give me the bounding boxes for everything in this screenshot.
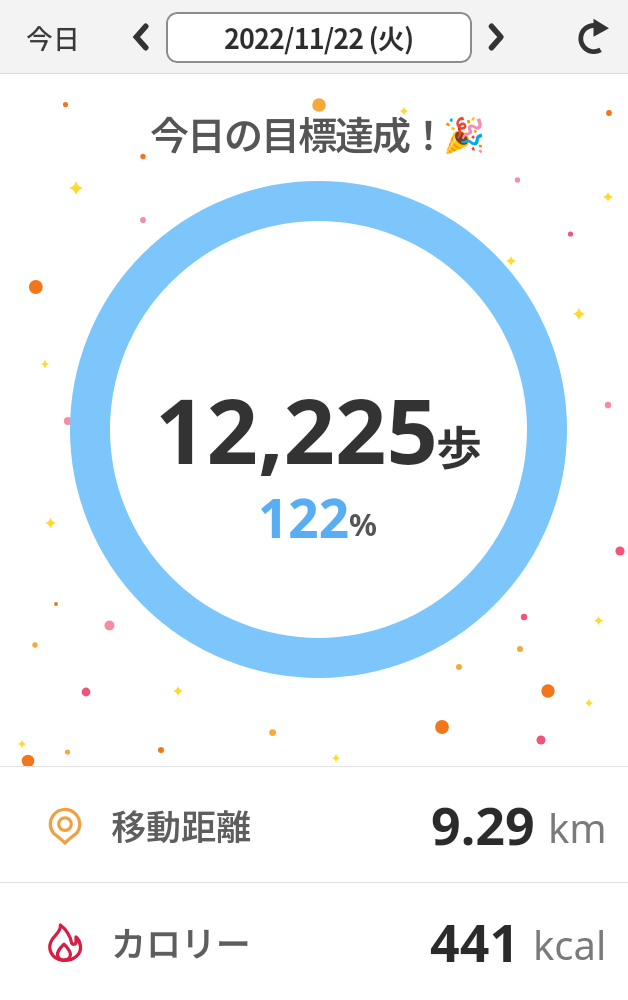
button[interactable]: 2022/11/22 (火) xyxy=(166,12,472,63)
staticText: 🎉 xyxy=(443,115,486,155)
button[interactable]: カロリー xyxy=(0,883,628,1000)
staticText: 今日 xyxy=(26,18,80,57)
button[interactable]: Previous day xyxy=(117,14,163,60)
staticText: 歩 xyxy=(436,412,482,479)
button[interactable]: 今日 xyxy=(16,8,90,67)
button[interactable]: Next day xyxy=(474,14,520,60)
staticText: 今日の目標達成！ xyxy=(150,105,447,161)
button[interactable]: 移動距離 xyxy=(0,767,628,882)
staticText: カロリー xyxy=(111,916,252,967)
button[interactable]: Refresh xyxy=(570,13,618,61)
staticText: 移動距離 xyxy=(111,799,252,850)
staticText: 441 xyxy=(430,906,520,977)
staticText: % xyxy=(349,503,377,545)
staticText: km xyxy=(548,800,607,854)
staticText: 122 xyxy=(258,481,349,553)
staticText: 12,225 xyxy=(155,368,439,491)
staticText: 9.29 xyxy=(431,789,535,860)
staticText: kcal xyxy=(533,917,607,971)
staticText: 2022/11/22 (火) xyxy=(224,18,414,57)
